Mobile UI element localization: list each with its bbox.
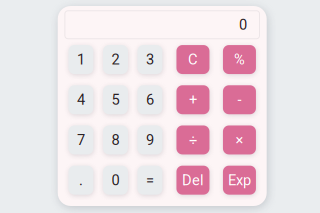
staticText: 2	[111, 51, 119, 68]
staticText: 7	[77, 131, 85, 149]
staticText: =	[146, 172, 154, 189]
button[interactable]: 3	[137, 45, 162, 74]
button[interactable]: ÷	[176, 125, 209, 154]
button[interactable]: 4	[68, 85, 93, 114]
button[interactable]: =	[137, 166, 162, 195]
staticText: 8	[111, 131, 119, 149]
button[interactable]: 7	[68, 125, 93, 154]
staticText: 9	[146, 131, 154, 149]
button[interactable]: 5	[103, 85, 128, 114]
button[interactable]: 2	[103, 45, 128, 74]
staticText: +	[189, 91, 197, 108]
staticText: C	[188, 51, 198, 68]
staticText: 6	[146, 91, 154, 108]
button[interactable]: 1	[68, 45, 93, 74]
button[interactable]: .	[68, 166, 93, 195]
staticText: -	[237, 91, 241, 108]
button[interactable]: ×	[223, 125, 256, 154]
staticText: .	[79, 172, 83, 189]
button[interactable]: +	[176, 85, 209, 114]
staticText: 4	[77, 91, 85, 108]
staticText: ×	[235, 131, 243, 149]
button[interactable]: 8	[103, 125, 128, 154]
staticText: Del	[182, 172, 204, 189]
staticText: 3	[146, 51, 154, 68]
button[interactable]: C	[176, 45, 209, 74]
button[interactable]: %	[223, 45, 256, 74]
button[interactable]: 6	[137, 85, 162, 114]
staticText: 0	[239, 16, 247, 33]
staticText: 0	[111, 172, 119, 189]
button[interactable]: 0	[103, 166, 128, 195]
button[interactable]: Exp	[223, 166, 256, 195]
button[interactable]: Del	[176, 166, 209, 195]
staticText: ÷	[189, 131, 197, 149]
staticText: %	[234, 51, 245, 68]
staticText: 5	[111, 91, 119, 108]
staticText: 1	[77, 51, 85, 68]
staticText: Exp	[228, 172, 251, 189]
button[interactable]: 9	[137, 125, 162, 154]
button[interactable]: -	[223, 85, 256, 114]
